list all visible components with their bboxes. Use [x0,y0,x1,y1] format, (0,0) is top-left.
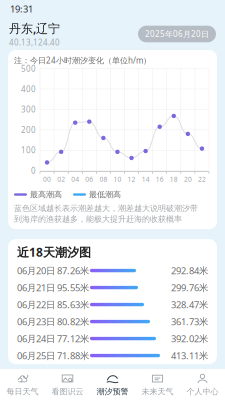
staticText: 近18天潮汐图 [17,244,91,260]
staticText: 12 [127,175,135,184]
staticText: 413.11米 [171,349,208,362]
staticText: 未来天气 [141,387,173,396]
staticText: 200 [21,124,36,135]
staticText: 100 [21,145,36,155]
staticText: 18 [170,175,178,184]
staticText: 每日天气 [6,387,38,396]
button[interactable]: 看图识云 [45,369,90,400]
staticText: 04 [71,175,79,184]
staticText: 06月20日 [17,264,55,277]
staticText: 300 [21,104,36,115]
staticText: 注：今日24小时潮汐变化（单位h/m） [14,55,151,66]
button[interactable]: 06月23日 [8,313,217,330]
staticText: 10 [113,175,121,184]
button[interactable]: 2025年06月20日 [138,26,216,42]
button[interactable]: 潮汐预警 [90,369,135,400]
staticText: 392.02米 [171,332,208,345]
staticText: 22 [198,175,206,184]
staticText: 16 [156,175,164,184]
staticText: 400 [21,84,36,94]
staticText: 0 [31,165,36,176]
staticText: 14 [142,175,150,184]
staticText: 08 [99,175,107,184]
staticText: 潮汐预警 [96,387,128,396]
staticText: 80.82米 [57,315,89,328]
staticText: 蓝色区域越长表示潮差越大，潮差越大说明破潮汐带 [14,203,198,213]
staticText: 06月21日 [17,281,55,294]
button[interactable]: 06月24日 [8,330,217,347]
staticText: 299.76米 [171,281,208,294]
staticText: 到海岸的渔获越多，能极大提升赶海的收获概率 [14,214,182,224]
staticText: 06月22日 [17,298,55,311]
button[interactable]: 06月22日 [8,296,217,313]
staticText: 328.47米 [171,298,208,311]
button[interactable]: 06月20日 [8,262,217,279]
staticText: 最高潮高 [30,190,62,199]
staticText: 500 [21,63,36,74]
staticText: 19:31 [10,3,33,15]
staticText: 2025年06月20日 [145,29,209,39]
staticText: 看图识云 [51,387,83,396]
staticText: 361.73米 [171,315,208,328]
button[interactable]: 个人中心 [180,369,225,400]
staticText: 20 [184,175,192,184]
staticText: 85.63米 [57,298,89,311]
staticText: 87.26米 [57,264,89,277]
staticText: 40.13,124.40 [9,37,60,48]
staticText: 02 [57,175,65,184]
staticText: 06月23日 [17,315,55,328]
staticText: 71.88米 [57,349,89,362]
staticText: 06 [85,175,93,184]
staticText: 292.84米 [171,264,208,277]
button[interactable]: 每日天气 [0,369,45,400]
button[interactable]: 06月25日 [8,347,217,364]
staticText: 95.55米 [57,281,89,294]
staticText: 06月24日 [17,332,55,345]
staticText: 77.12米 [57,332,89,345]
staticText: 个人中心 [186,387,218,396]
button[interactable]: 未来天气 [135,369,180,400]
staticText: 00 [43,175,51,184]
button[interactable]: 06月21日 [8,279,217,296]
staticText: 06月25日 [17,349,55,362]
staticText: 丹东,辽宁 [9,20,60,36]
staticText: 最低潮高 [89,190,121,199]
